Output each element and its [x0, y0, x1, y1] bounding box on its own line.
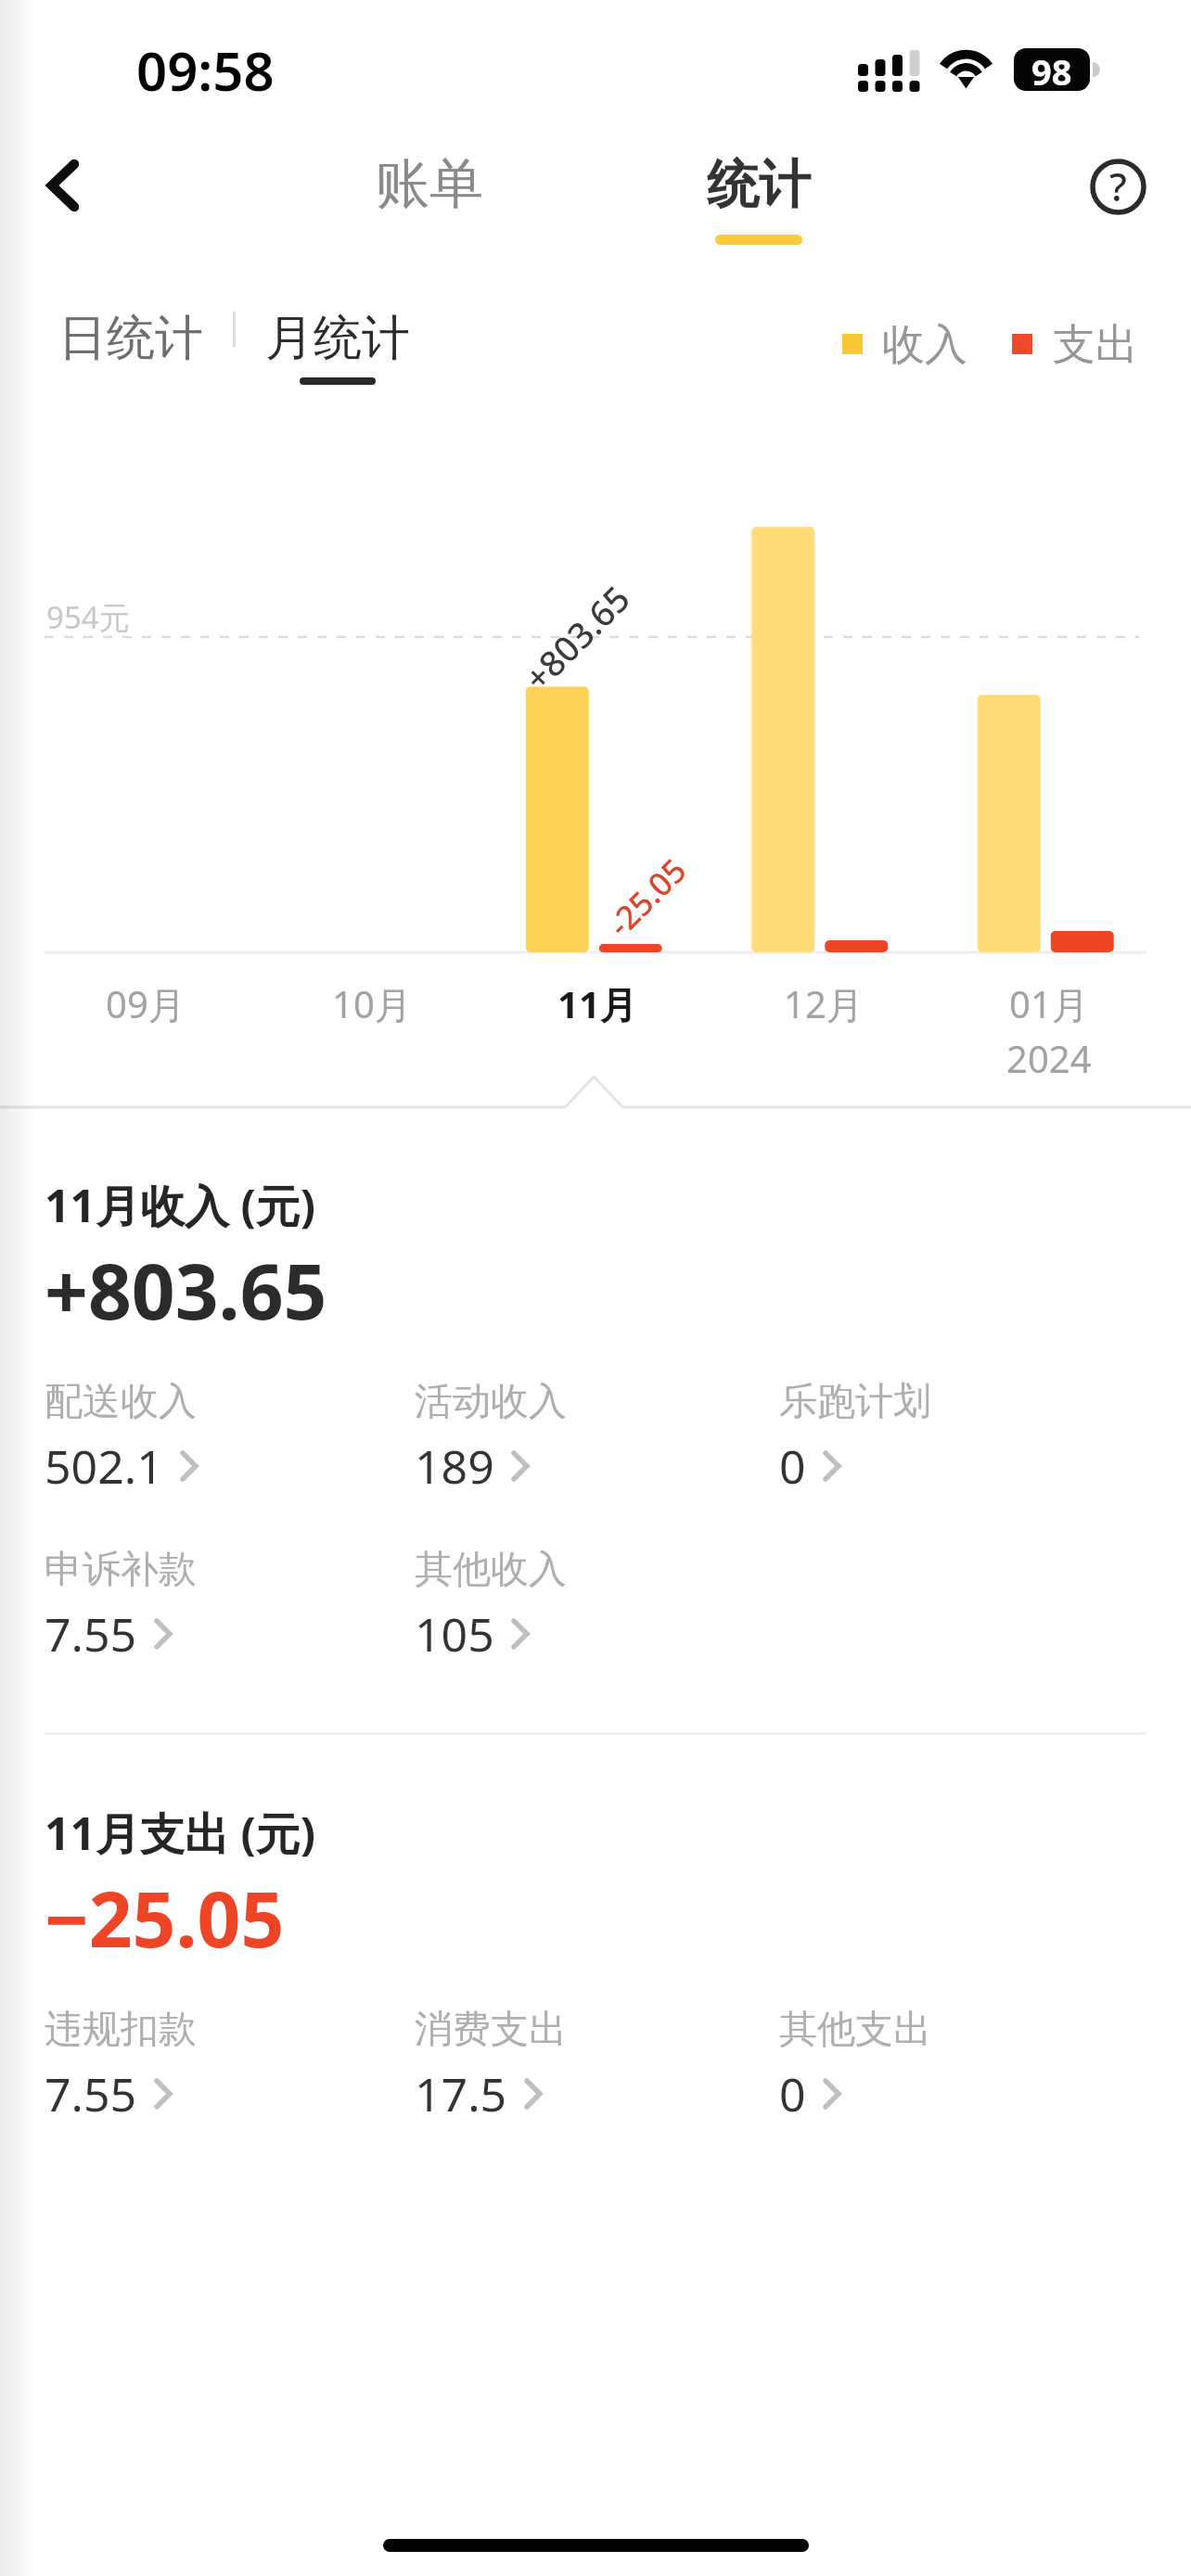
staticText: 11月收入 (元)	[45, 1175, 315, 1236]
button[interactable]: 申诉补款	[45, 1546, 378, 1665]
staticText: 98	[1031, 48, 1072, 90]
staticText: 7.55	[45, 1602, 137, 1665]
staticText: 11月支出 (元)	[45, 1803, 315, 1864]
staticText: 11月	[557, 978, 637, 1029]
staticText: 502.1	[45, 1435, 163, 1498]
button[interactable]: 其他支出	[779, 2006, 1113, 2125]
button[interactable]: 月统计	[265, 308, 410, 385]
staticText: 收入	[882, 318, 967, 372]
staticText: 账单	[376, 150, 483, 218]
staticText: 活动收入	[415, 1378, 567, 1426]
button[interactable]: 账单	[355, 137, 504, 230]
button[interactable]: Back	[10, 133, 116, 238]
button[interactable]: 统计	[685, 152, 833, 271]
staticText: 189	[415, 1435, 494, 1498]
staticText: 申诉补款	[45, 1546, 197, 1594]
button[interactable]: 12月	[722, 978, 926, 1099]
staticText: 0	[779, 1435, 806, 1498]
staticText: 17.5	[415, 2062, 507, 2125]
staticText: 2024	[1006, 1033, 1092, 1083]
staticText: 支出	[1053, 318, 1138, 372]
button[interactable]: 其他收入	[415, 1546, 749, 1665]
button[interactable]: 01月	[947, 978, 1151, 1099]
staticText: 09月	[106, 978, 186, 1029]
staticText: 12月	[784, 978, 864, 1029]
staticText: -25.05	[598, 848, 696, 946]
staticText: 月统计	[265, 308, 410, 369]
button[interactable]: 日统计	[58, 302, 203, 375]
staticText: +803.65	[45, 1238, 327, 1342]
staticText: 乐跑计划	[779, 1378, 931, 1426]
staticText: 09:58	[136, 33, 275, 107]
button[interactable]: 配送收入	[45, 1378, 378, 1498]
staticText: 配送收入	[45, 1378, 197, 1426]
staticText: 954元	[46, 596, 130, 638]
button[interactable]: 活动收入	[415, 1378, 749, 1498]
staticText: 违规扣款	[45, 2006, 197, 2054]
staticText: ?	[1109, 159, 1127, 212]
staticText: 其他支出	[779, 2006, 931, 2054]
button[interactable]: 乐跑计划	[779, 1378, 1113, 1498]
button[interactable]: 09月	[44, 978, 248, 1099]
staticText: 10月	[332, 978, 412, 1029]
staticText: 日统计	[58, 308, 203, 369]
staticText: 统计	[707, 152, 811, 218]
staticText: +803.65	[513, 574, 640, 701]
staticText: 其他收入	[415, 1546, 567, 1594]
button[interactable]: Help	[1066, 134, 1170, 238]
staticText: 7.55	[45, 2062, 137, 2125]
staticText: −25.05	[45, 1866, 285, 1970]
staticText: 01月	[1009, 978, 1089, 1029]
button[interactable]: 消费支出	[415, 2006, 749, 2125]
staticText: 消费支出	[415, 2006, 567, 2054]
staticText: 0	[779, 2062, 806, 2125]
staticText: 105	[415, 1602, 494, 1665]
button[interactable]: 10月	[270, 978, 474, 1099]
button[interactable]: 11月	[495, 978, 699, 1099]
button[interactable]: 违规扣款	[45, 2006, 378, 2125]
